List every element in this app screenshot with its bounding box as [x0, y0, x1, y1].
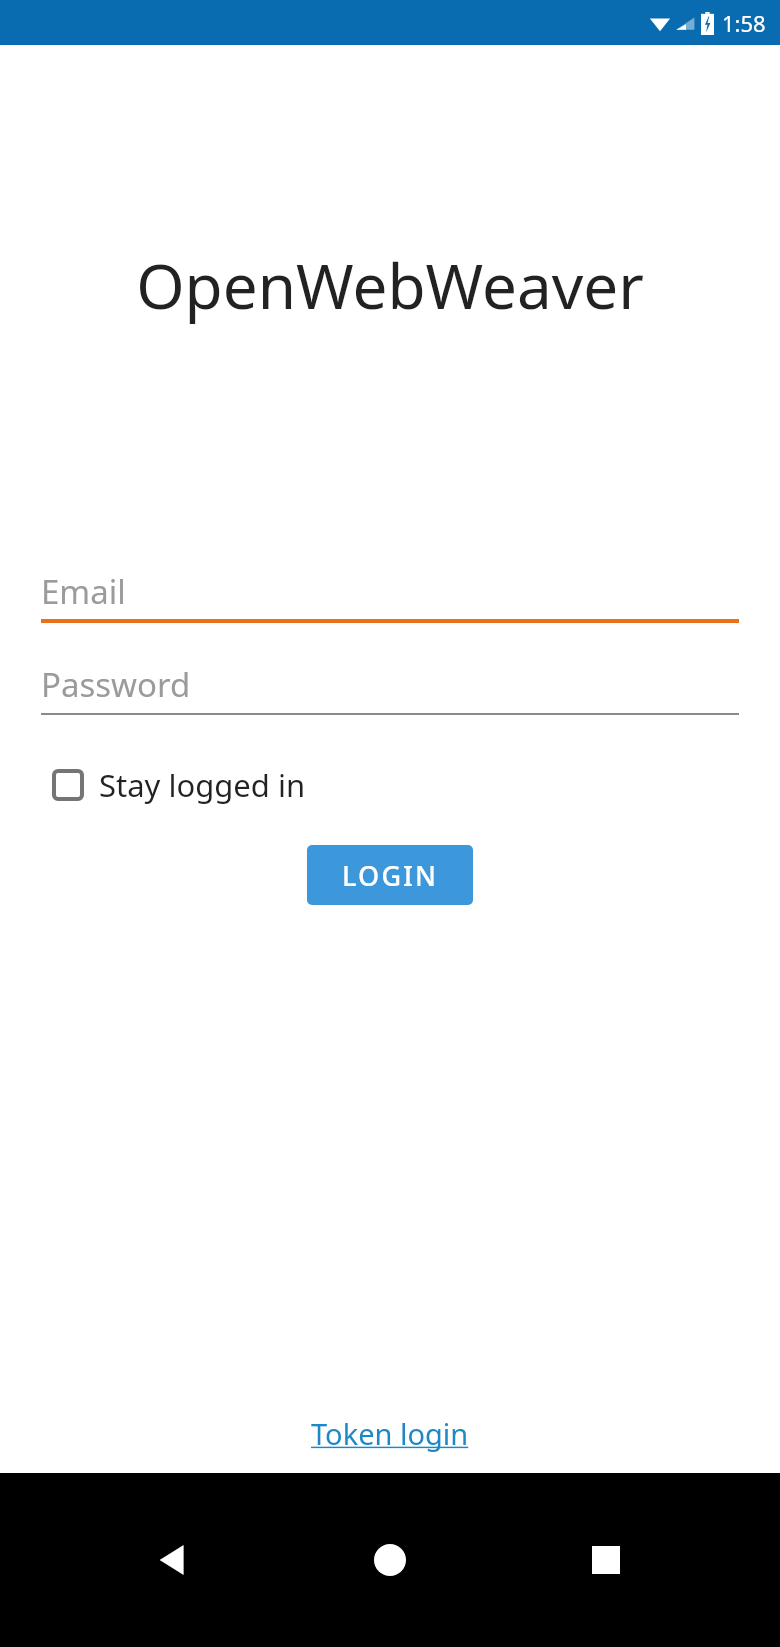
staticText: Password — [41, 662, 191, 707]
staticText: LOGIN — [342, 857, 439, 894]
staticText: Token login — [311, 1414, 469, 1453]
button[interactable]: Password — [41, 660, 739, 715]
button[interactable]: Recent apps — [564, 1518, 648, 1602]
staticText: Stay logged in — [99, 764, 306, 806]
button[interactable]: Stay logged in — [41, 758, 306, 812]
staticText: Email — [41, 569, 126, 614]
staticText: OpenWebWeaver — [136, 243, 644, 327]
staticText: 1:58 — [722, 8, 766, 38]
button[interactable]: Token login — [299, 1406, 481, 1461]
button[interactable]: Email — [41, 567, 739, 623]
button[interactable]: Back — [132, 1518, 216, 1602]
button[interactable]: LOGIN — [307, 845, 473, 905]
button[interactable]: Home — [348, 1518, 432, 1602]
